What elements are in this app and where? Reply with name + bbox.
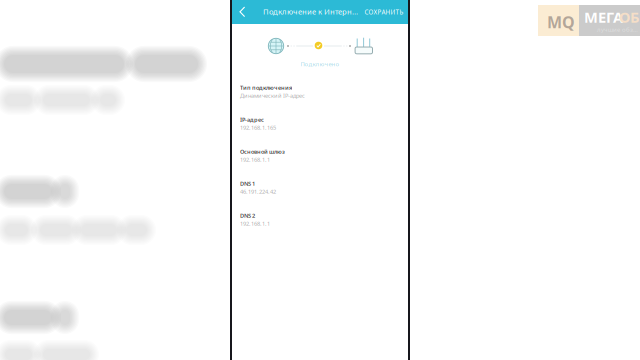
staticText: 192.168.1.1: [240, 220, 270, 227]
staticText: лучшие обзоры: [597, 25, 640, 34]
staticText: DNS 2: [240, 212, 255, 219]
staticText: Динамический IP-адрес: [240, 92, 305, 99]
staticText: МЕГА: [584, 7, 623, 27]
button[interactable]: СОХРАНИТЬ: [363, 8, 405, 16]
staticText: 192.168.1.165: [240, 124, 276, 131]
staticText: 192.168.1.1: [240, 156, 270, 163]
staticText: DNS 1: [240, 180, 255, 187]
staticText: 46.191.224.42: [240, 188, 276, 195]
staticText: Подключение к Интерн…: [263, 6, 358, 17]
staticText: MQ: [547, 11, 575, 33]
staticText: Подключено: [300, 60, 339, 68]
staticText: Тип подключения: [240, 84, 292, 91]
staticText: ОБЗ: [619, 7, 640, 27]
staticText: СОХРАНИТЬ: [364, 8, 403, 16]
staticText: Основной шлюз: [240, 148, 285, 155]
button[interactable]: Back: [236, 5, 250, 19]
staticText: IP-адрес: [240, 116, 264, 123]
